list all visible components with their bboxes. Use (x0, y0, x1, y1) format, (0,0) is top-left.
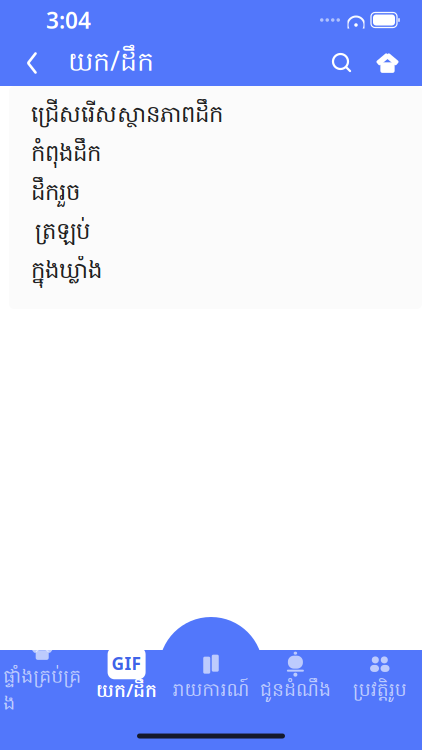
button[interactable]: GIF (108, 647, 146, 679)
button[interactable]: ដឹករួច (9, 175, 422, 214)
button[interactable]: Home (365, 45, 410, 80)
button[interactable]: ក្នុងឃ្លាំង (9, 253, 422, 292)
staticText: រាយការណ៍ (172, 678, 249, 705)
staticText: 3:04 (46, 5, 91, 35)
staticText: កំពុងដឹក (31, 139, 101, 172)
staticText: ជ្រើសរើសស្ថានភាពដឹក (31, 100, 223, 133)
staticText: ដឹករួច (31, 178, 80, 211)
button[interactable]: រាយការណ៍ (169, 647, 253, 711)
button[interactable]: ត្រឡប់ (9, 214, 422, 253)
button[interactable]: ជូនដំណឹង (253, 647, 338, 711)
staticText: ត្រឡប់ (35, 217, 90, 250)
button[interactable]: ប្រវត្តិរូប (338, 647, 422, 711)
staticText: ក្នុងឃ្លាំង (31, 256, 102, 289)
button[interactable]: GIF (84, 646, 169, 712)
button[interactable]: កំពុងដឹក (9, 136, 422, 175)
staticText: យក/ដឹក (96, 677, 157, 706)
staticText: ផ្ទាំងគ្រប់គ្រង (3, 665, 81, 718)
staticText: ជូនដំណឹង (260, 678, 331, 705)
staticText: យក/ដឹក (68, 43, 154, 83)
button[interactable]: ផ្ទាំងគ្រប់គ្រង (0, 634, 84, 724)
button[interactable]: Back (10, 44, 54, 82)
staticText: GIF (112, 652, 142, 675)
staticText: ប្រវត្តិរូប (353, 678, 407, 705)
button[interactable]: ជ្រើសរើសស្ថានភាពដឹក (9, 97, 422, 136)
button[interactable]: Search (319, 45, 365, 81)
